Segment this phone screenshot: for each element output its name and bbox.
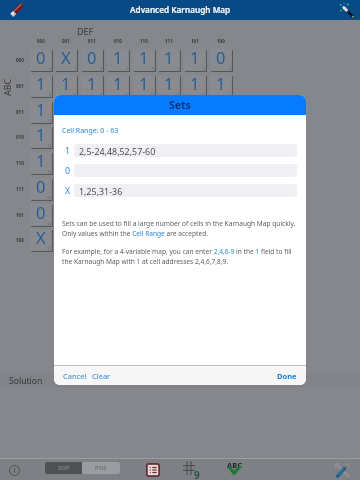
- button[interactable]: 0: [55, 178, 78, 201]
- button[interactable]: X: [55, 49, 78, 72]
- staticText: 1: [164, 72, 174, 94]
- staticText: 59: [98, 195, 103, 200]
- button[interactable]: X: [184, 229, 207, 252]
- button[interactable]: 0: [133, 204, 156, 227]
- staticText: 1: [87, 72, 97, 94]
- button[interactable]: 1: [158, 49, 181, 72]
- button[interactable]: 1: [184, 75, 207, 98]
- button[interactable]: Done: [277, 371, 297, 381]
- button[interactable]: 1: [55, 101, 78, 124]
- button[interactable]: X: [133, 229, 156, 252]
- button[interactable]: Info: [5, 461, 23, 479]
- button[interactable]: 1: [210, 126, 233, 149]
- staticText: 1: [216, 72, 226, 94]
- button[interactable]: 1: [81, 152, 104, 175]
- button[interactable]: 1: [107, 75, 130, 98]
- button[interactable]: 1: [30, 75, 53, 98]
- button[interactable]: 0: [81, 178, 104, 201]
- button[interactable]: 0: [81, 204, 104, 227]
- button[interactable]: 0: [107, 204, 130, 227]
- button[interactable]: 0: [30, 204, 53, 227]
- staticText: 1: [61, 123, 71, 145]
- button[interactable]: 0: [107, 178, 130, 201]
- staticText: 14: [150, 92, 155, 97]
- button[interactable]: 0: [158, 178, 181, 201]
- button[interactable]: 1: [107, 126, 130, 149]
- button[interactable]: 0: [133, 178, 156, 201]
- button[interactable]: 1: [210, 101, 233, 124]
- button[interactable]: 1: [158, 152, 181, 175]
- button[interactable]: 1: [107, 101, 130, 124]
- button[interactable]: Truth table: [144, 461, 161, 478]
- staticText: 111: [165, 38, 173, 44]
- button[interactable]: 1,25,31-36: [74, 184, 297, 197]
- button[interactable]: 1: [81, 75, 104, 98]
- staticText: Cancel: [63, 371, 87, 381]
- button[interactable]: 0: [81, 49, 104, 72]
- button[interactable]: 0: [30, 49, 53, 72]
- button[interactable]: Clear: [92, 371, 111, 381]
- staticText: 1: [190, 98, 200, 120]
- staticText: 1: [61, 149, 71, 171]
- button[interactable]: X: [55, 229, 78, 252]
- button[interactable]: 1: [184, 101, 207, 124]
- button[interactable]: 1: [30, 152, 53, 175]
- button[interactable]: 1: [107, 49, 130, 72]
- button[interactable]: 0: [55, 204, 78, 227]
- button[interactable]: POS: [82, 462, 120, 474]
- button[interactable]: X: [210, 229, 233, 252]
- staticText: SOP: [58, 464, 70, 472]
- button[interactable]: 1: [158, 75, 181, 98]
- button[interactable]: 1: [210, 152, 233, 175]
- button[interactable]: 1: [184, 126, 207, 149]
- button[interactable]: 1: [158, 101, 181, 124]
- button[interactable]: Erase: [7, 0, 27, 20]
- button[interactable]: Variables: [182, 460, 200, 478]
- button[interactable]: 1: [133, 126, 156, 149]
- staticText: 0: [216, 175, 226, 197]
- staticText: 46: [150, 221, 155, 226]
- button[interactable]: 1: [133, 75, 156, 98]
- button[interactable]: SOP: [45, 462, 82, 474]
- button[interactable]: 1: [133, 101, 156, 124]
- button[interactable]: 0: [30, 178, 53, 201]
- button[interactable]: 0: [210, 204, 233, 227]
- button[interactable]: X: [81, 229, 104, 252]
- button[interactable]: 0: [158, 204, 181, 227]
- button[interactable]: 1: [55, 126, 78, 149]
- button[interactable]: X: [107, 229, 130, 252]
- button[interactable]: 2,5-24,48,52,57-60: [74, 144, 297, 157]
- button[interactable]: 1: [184, 49, 207, 72]
- button[interactable]: 1: [30, 126, 53, 149]
- staticText: 5: [203, 66, 206, 71]
- button[interactable]: Cancel: [63, 371, 87, 381]
- staticText: X: [61, 46, 71, 68]
- button[interactable]: 1: [107, 152, 130, 175]
- button[interactable]: Settings: [333, 461, 351, 479]
- button[interactable]: X: [158, 229, 181, 252]
- button[interactable]: 1: [55, 75, 78, 98]
- button[interactable]: 1: [133, 152, 156, 175]
- button[interactable]: X: [30, 229, 53, 252]
- staticText: 36: [227, 246, 232, 251]
- staticText: 10: [124, 92, 129, 97]
- button[interactable]: 1: [210, 75, 233, 98]
- staticText: 45: [201, 221, 206, 226]
- button[interactable]: 1: [184, 152, 207, 175]
- button[interactable]: 1: [81, 101, 104, 124]
- button[interactable]: Names: [225, 459, 243, 477]
- button[interactable]: 1: [81, 126, 104, 149]
- button[interactable]: 0: [210, 49, 233, 72]
- button[interactable]: 1: [30, 101, 53, 124]
- staticText: ABC: [227, 460, 242, 470]
- button[interactable]: 1: [133, 49, 156, 72]
- button[interactable]: 1: [158, 126, 181, 149]
- button[interactable]: Magic wand: [336, 0, 356, 20]
- staticText: 1: [190, 123, 200, 145]
- button[interactable]: 0: [210, 178, 233, 201]
- button[interactable]: 0: [184, 178, 207, 201]
- button[interactable]: 0: [184, 204, 207, 227]
- button[interactable]: 1: [55, 152, 78, 175]
